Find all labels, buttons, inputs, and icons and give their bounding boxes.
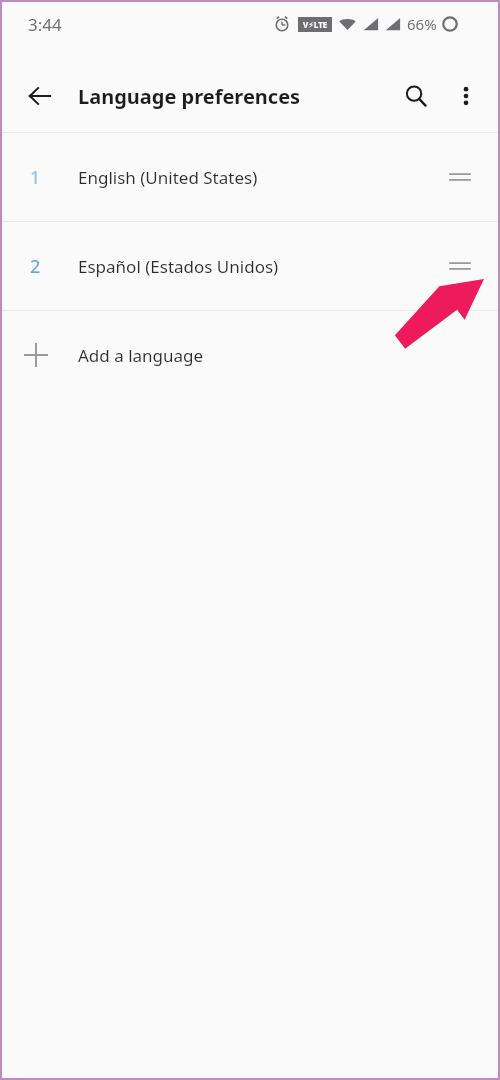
button[interactable]: 2: [2, 222, 498, 310]
staticText: Español (Estados Unidos): [78, 255, 279, 278]
staticText: 1: [30, 165, 41, 190]
staticText: Add a language: [78, 344, 204, 367]
staticText: 3:44: [28, 13, 62, 36]
other: Reorder: [440, 157, 480, 197]
staticText: 66%: [407, 14, 437, 34]
staticText: V⚡LTE: [303, 19, 328, 30]
other: Reorder: [440, 246, 480, 286]
button[interactable]: Add a language: [2, 311, 498, 399]
button[interactable]: 1: [2, 133, 498, 221]
staticText: Language preferences: [78, 83, 301, 110]
staticText: 2: [30, 254, 41, 279]
button[interactable]: Search: [392, 72, 440, 120]
button[interactable]: More options: [442, 72, 490, 120]
button[interactable]: Back: [16, 72, 64, 120]
staticText: English (United States): [78, 166, 258, 189]
